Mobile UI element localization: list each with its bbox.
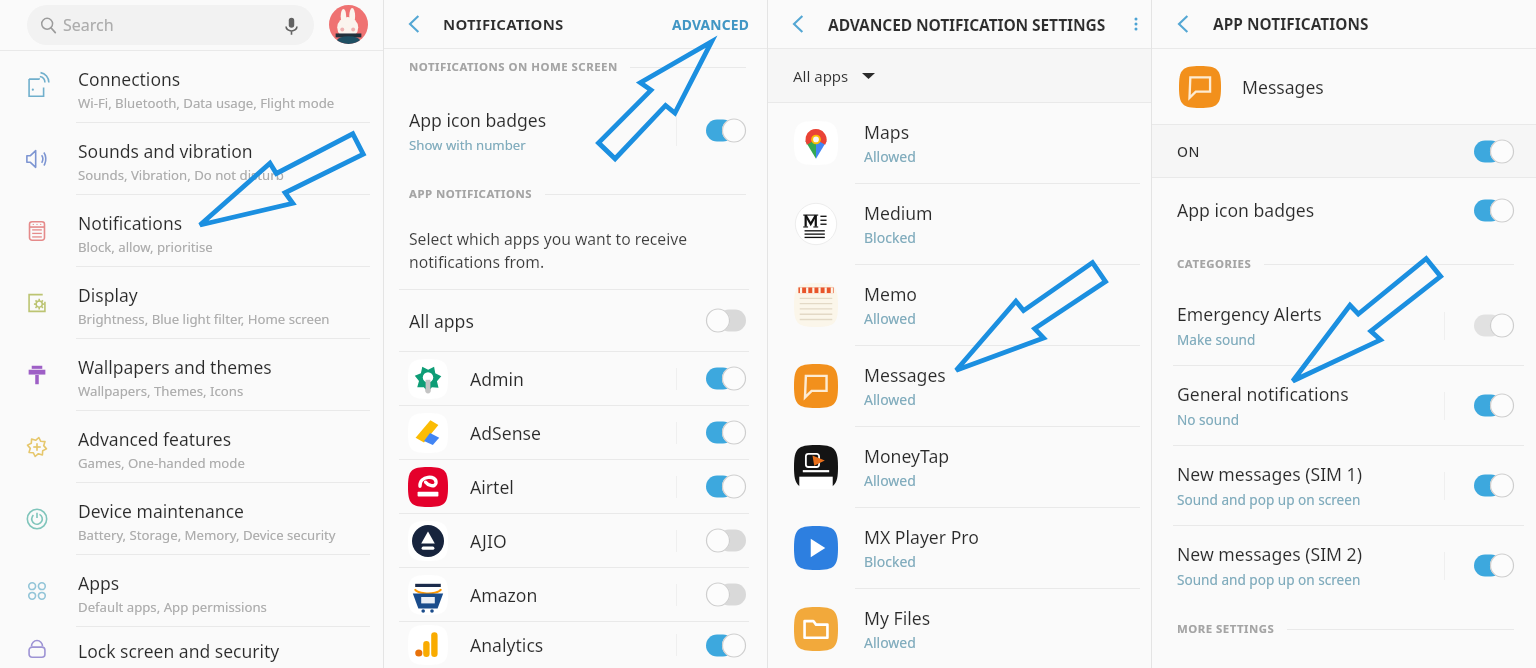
button[interactable]: Emergency Alerts <box>1152 286 1536 365</box>
staticText: Allowed <box>864 147 916 166</box>
button[interactable] <box>1474 313 1514 338</box>
staticText: Allowed <box>864 633 916 652</box>
button[interactable]: General notifications <box>1152 366 1536 445</box>
staticText: NOTIFICATIONS ON HOME SCREEN <box>409 59 618 75</box>
button[interactable] <box>706 420 746 445</box>
button[interactable]: Back <box>1152 0 1213 48</box>
button[interactable] <box>1474 198 1514 223</box>
staticText: Maps <box>864 120 910 144</box>
button[interactable] <box>1474 393 1514 418</box>
staticText: NOTIFICATIONS <box>443 14 564 34</box>
staticText: My Files <box>864 606 931 630</box>
staticText: Airtel <box>470 475 676 499</box>
button[interactable] <box>1474 473 1514 498</box>
staticText: Sounds, Vibration, Do not disturb <box>78 166 284 184</box>
staticText: Wallpapers and themes <box>78 355 272 379</box>
staticText: Default apps, App permissions <box>78 598 267 616</box>
staticText: Analytics <box>470 633 676 657</box>
button[interactable] <box>706 308 746 333</box>
staticText: Games, One-handed mode <box>78 454 245 472</box>
staticText: Select which apps you want to receive no… <box>409 228 688 272</box>
staticText: Memo <box>864 282 917 306</box>
button[interactable]: All apps <box>768 49 1152 102</box>
staticText: App icon badges <box>409 108 547 132</box>
staticText: Display <box>78 283 138 307</box>
staticText: Show with number <box>409 136 526 154</box>
button[interactable] <box>1474 553 1514 578</box>
staticText: Sound and pop up on screen <box>1177 570 1361 589</box>
button[interactable]: New messages (SIM 2) <box>1152 526 1536 605</box>
button[interactable]: Medium <box>768 184 1152 264</box>
button[interactable]: Memo <box>768 265 1152 345</box>
staticText: Notifications <box>78 211 183 235</box>
button[interactable]: New messages (SIM 1) <box>1152 446 1536 525</box>
button[interactable]: Sounds and vibration <box>0 123 384 194</box>
staticText: Amazon <box>470 583 676 607</box>
staticText: Medium <box>864 201 933 225</box>
staticText: Allowed <box>864 471 916 490</box>
staticText: All apps <box>409 309 706 333</box>
button[interactable]: AJIO <box>384 514 768 567</box>
button[interactable]: MX Player Pro <box>768 508 1152 588</box>
button[interactable]: Notifications <box>0 195 384 266</box>
button[interactable]: Back <box>384 0 443 48</box>
button[interactable]: Back <box>768 0 828 48</box>
staticText: Emergency Alerts <box>1177 302 1322 326</box>
button[interactable]: Admin <box>384 352 768 405</box>
button[interactable] <box>706 528 746 553</box>
staticText: Apps <box>78 571 120 595</box>
button[interactable]: App icon badges <box>384 85 768 176</box>
staticText: ADVANCED NOTIFICATION SETTINGS <box>828 14 1106 35</box>
staticText: App icon badges <box>1177 198 1474 222</box>
staticText: Sounds and vibration <box>78 139 253 163</box>
staticText: AdSense <box>470 421 676 445</box>
staticText: APP NOTIFICATIONS <box>1213 14 1369 35</box>
button[interactable] <box>706 474 746 499</box>
button[interactable]: All apps <box>384 290 768 351</box>
staticText: Allowed <box>864 390 916 409</box>
staticText: General notifications <box>1177 382 1349 406</box>
button[interactable]: More options <box>1120 0 1152 48</box>
button[interactable] <box>706 633 746 658</box>
button[interactable]: Advanced features <box>0 411 384 482</box>
button[interactable] <box>706 118 746 143</box>
button[interactable]: Profile <box>329 5 368 44</box>
button[interactable]: App icon badges <box>1152 178 1536 242</box>
button[interactable]: My Files <box>768 589 1152 668</box>
button[interactable]: Display <box>0 267 384 338</box>
button[interactable] <box>1474 139 1514 164</box>
button[interactable]: Maps <box>768 103 1152 183</box>
button[interactable]: Wallpapers and themes <box>0 339 384 410</box>
staticText: Sound and pop up on screen <box>1177 490 1361 509</box>
staticText: Battery, Storage, Memory, Device securit… <box>78 526 336 544</box>
button[interactable]: Apps <box>0 555 384 626</box>
button[interactable]: Connections <box>0 51 384 122</box>
staticText: Device maintenance <box>78 499 244 523</box>
staticText: Blocked <box>864 552 916 571</box>
button[interactable]: Amazon <box>384 568 768 621</box>
staticText: Block, allow, prioritise <box>78 238 213 256</box>
button[interactable]: Search <box>27 5 314 45</box>
staticText: Search <box>63 14 114 36</box>
staticText: MX Player Pro <box>864 525 979 549</box>
staticText: No sound <box>1177 410 1239 429</box>
button[interactable]: Lock screen and security <box>0 627 384 668</box>
staticText: Lock screen and security <box>78 639 280 663</box>
button[interactable]: MoneyTap <box>768 427 1152 507</box>
button[interactable]: Messages <box>1152 49 1536 124</box>
button[interactable] <box>706 582 746 607</box>
staticText: ADVANCED <box>672 15 749 34</box>
button[interactable]: Device maintenance <box>0 483 384 554</box>
button[interactable]: Airtel <box>384 460 768 513</box>
staticText: MORE SETTINGS <box>1177 621 1275 637</box>
button[interactable]: ON <box>1152 125 1536 177</box>
staticText: All apps <box>793 66 849 86</box>
button[interactable]: ADVANCED <box>672 15 749 34</box>
button[interactable]: Messages <box>768 346 1152 426</box>
staticText: Brightness, Blue light filter, Home scre… <box>78 310 330 328</box>
staticText: Wallpapers, Themes, Icons <box>78 382 244 400</box>
button[interactable] <box>706 366 746 391</box>
staticText: New messages (SIM 2) <box>1177 542 1362 566</box>
button[interactable]: Analytics <box>384 622 768 668</box>
button[interactable]: AdSense <box>384 406 768 459</box>
